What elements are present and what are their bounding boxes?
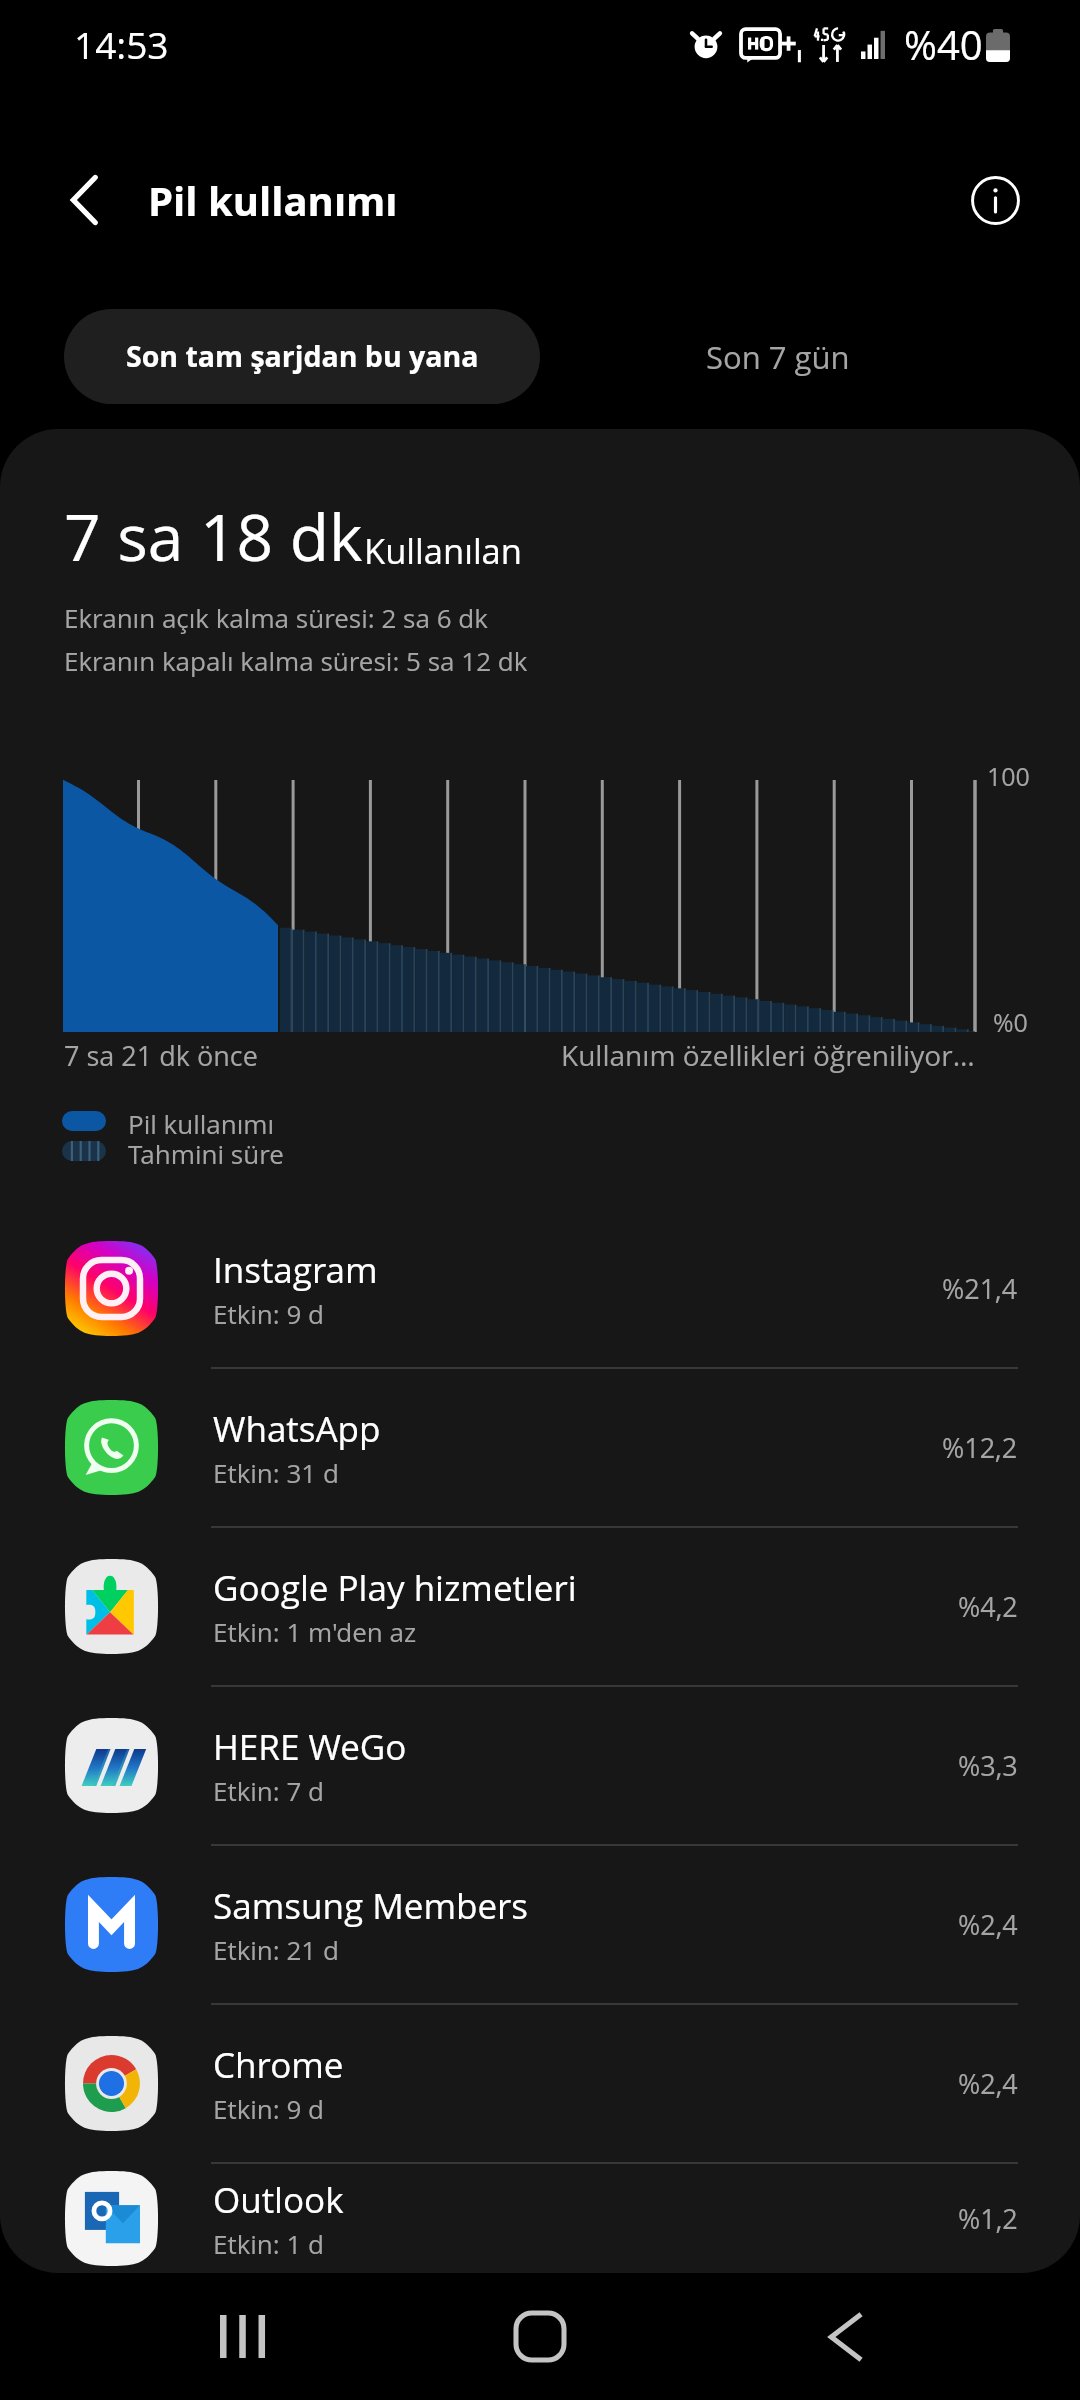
button[interactable]: Google Play hizmetleri [0, 1528, 1080, 1687]
staticText: Etkin: 9 d [213, 1296, 325, 1331]
staticText: %3,3 [958, 1747, 1018, 1784]
button[interactable]: Son 7 gün [540, 309, 1015, 404]
button[interactable]: Son tam şarjdan bu yana [64, 309, 540, 404]
staticText: %0 [993, 1005, 1028, 1039]
staticText: Etkin: 31 d [213, 1455, 339, 1490]
staticText: 14:53 [74, 19, 169, 69]
staticText: %2,4 [958, 1906, 1018, 1943]
staticText: Son tam şarjdan bu yana [126, 337, 479, 376]
staticText: Kullanım özellikleri öğreniliyor… [561, 1036, 975, 1074]
staticText: %4,2 [958, 1588, 1018, 1625]
button[interactable]: HERE WeGo [0, 1687, 1080, 1846]
button[interactable]: Information [947, 152, 1043, 248]
button[interactable]: Instagram [0, 1210, 1080, 1369]
staticText: Google Play hizmetleri [213, 1564, 577, 1612]
staticText: Instagram [213, 1246, 378, 1294]
staticText: Etkin: 1 d [213, 2226, 325, 2261]
button[interactable]: Back [36, 152, 132, 248]
staticText: %40 [904, 17, 983, 71]
staticText: Etkin: 1 m'den az [213, 1614, 417, 1649]
button[interactable]: Samsung Members [0, 1846, 1080, 2005]
button[interactable]: Home [460, 2273, 620, 2400]
staticText: WhatsApp [213, 1405, 381, 1453]
staticText: Son 7 gün [706, 336, 850, 378]
staticText: HERE WeGo [213, 1723, 407, 1771]
staticText: %1,2 [958, 2200, 1018, 2237]
staticText: %21,4 [942, 1270, 1018, 1307]
staticText: Outlook [213, 2176, 344, 2224]
staticText: Etkin: 9 d [213, 2091, 325, 2126]
staticText: %12,2 [942, 1429, 1018, 1466]
staticText: Samsung Members [213, 1882, 529, 1930]
staticText: Chrome [213, 2041, 344, 2089]
staticText: Etkin: 21 d [213, 1932, 339, 1967]
staticText: Tahmini süre [128, 1136, 284, 1166]
staticText: %2,4 [958, 2065, 1018, 2102]
staticText: 7 sa 21 dk önce [64, 1037, 258, 1074]
button[interactable]: Chrome [0, 2005, 1080, 2164]
staticText: Ekranın açık kalma süresi: 2 sa 6 dk [64, 600, 488, 635]
staticText: 100 [987, 759, 1030, 793]
staticText: Etkin: 7 d [213, 1773, 325, 1808]
button[interactable]: Recent apps [162, 2273, 322, 2400]
staticText: Ekranın kapalı kalma süresi: 5 sa 12 dk [64, 643, 528, 678]
staticText: 7 sa 18 dk [64, 493, 363, 580]
staticText: Pil kullanımı [148, 173, 398, 227]
button[interactable]: WhatsApp [0, 1369, 1080, 1528]
staticText: Pil kullanımı [128, 1106, 275, 1136]
button[interactable]: Outlook [0, 2164, 1080, 2273]
button[interactable]: Back [764, 2273, 924, 2400]
staticText: Kullanılan [364, 527, 522, 574]
